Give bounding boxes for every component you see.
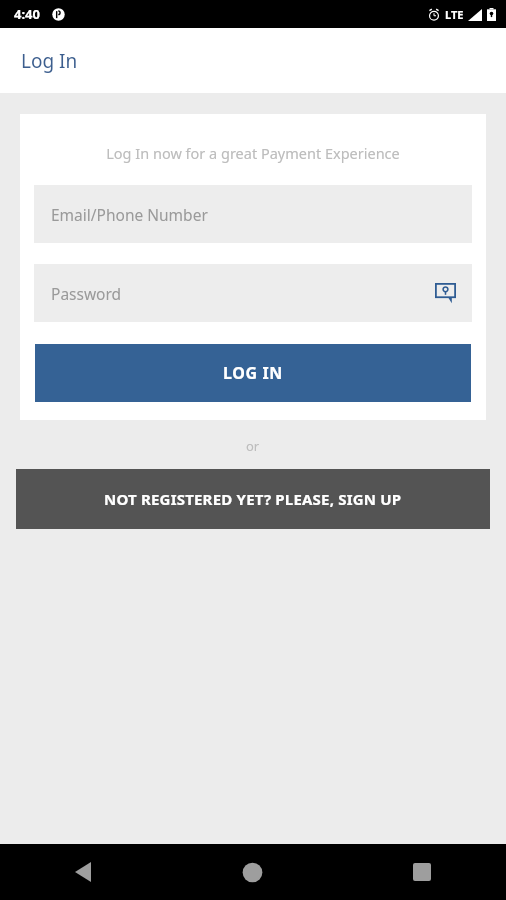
button[interactable]: Back (0, 844, 168, 900)
staticText: Log In (21, 48, 78, 74)
staticText: Email/Phone Number (51, 204, 208, 225)
button[interactable]: Password help (432, 280, 458, 306)
button[interactable]: Recent apps (337, 844, 506, 900)
button[interactable]: Email/Phone Number (34, 185, 472, 243)
staticText: NOT REGISTERED YET? PLEASE, SIGN UP (104, 489, 402, 509)
staticText: LOG IN (223, 362, 283, 384)
staticText: Password (51, 283, 122, 304)
button[interactable]: Home (168, 844, 337, 900)
staticText: 4:40 (14, 5, 40, 23)
staticText: LTE (445, 7, 464, 22)
button[interactable]: Password (34, 264, 472, 322)
button[interactable]: NOT REGISTERED YET? PLEASE, SIGN UP (16, 469, 490, 529)
staticText: Log In now for a great Payment Experienc… (106, 143, 400, 163)
staticText: or (246, 437, 260, 455)
button[interactable]: LOG IN (35, 344, 471, 402)
